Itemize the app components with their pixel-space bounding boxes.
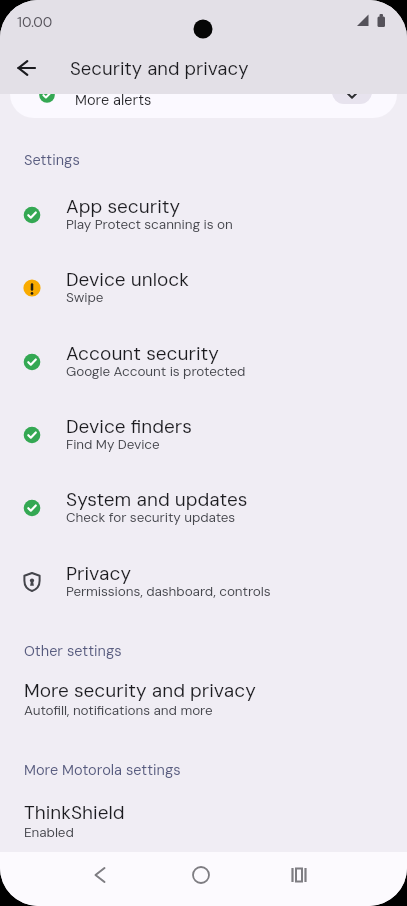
staticText: Check for security updates [66,509,236,527]
button[interactable]: Device unlock [0,253,407,326]
button[interactable]: System and updates [0,473,407,546]
staticText: Privacy [66,561,131,586]
staticText: Find My Device [66,436,160,454]
button[interactable]: Security and privacy [0,42,407,94]
staticText: Swipe [66,289,104,307]
staticText: Autofill, notifications and more [24,702,213,720]
button[interactable]: App security [0,180,407,253]
staticText: System and updates [66,487,248,512]
staticText: More Motorola settings [24,761,181,780]
staticText: Play Protect scanning is on [66,216,233,234]
button[interactable]: ThinkShield [0,794,407,858]
button[interactable] [271,852,407,906]
staticText: Google Account is protected [66,363,246,381]
staticText: Enabled [24,824,74,842]
button[interactable]: Account security [0,327,407,400]
button[interactable]: Privacy [0,547,407,620]
staticText: Other settings [24,642,122,661]
staticText: ThinkShield [24,800,125,825]
staticText: Permissions, dashboard, controls [66,583,271,601]
button[interactable]: More security and privacy [0,672,407,736]
button[interactable]: Device finders [0,400,407,473]
button[interactable] [332,94,372,104]
staticText: Device unlock [66,267,189,292]
staticText: Security and privacy [70,57,249,81]
staticText: More security and privacy [24,678,256,703]
button[interactable]: More alerts [10,94,397,118]
staticText: Settings [24,151,80,170]
button[interactable] [6,48,46,88]
button[interactable] [135,852,271,906]
staticText: Account security [66,341,219,366]
staticText: More alerts [75,94,152,110]
button[interactable] [0,852,135,906]
staticText: Device finders [66,414,192,439]
staticText: 10.00 [17,13,53,32]
staticText: App security [66,194,181,219]
